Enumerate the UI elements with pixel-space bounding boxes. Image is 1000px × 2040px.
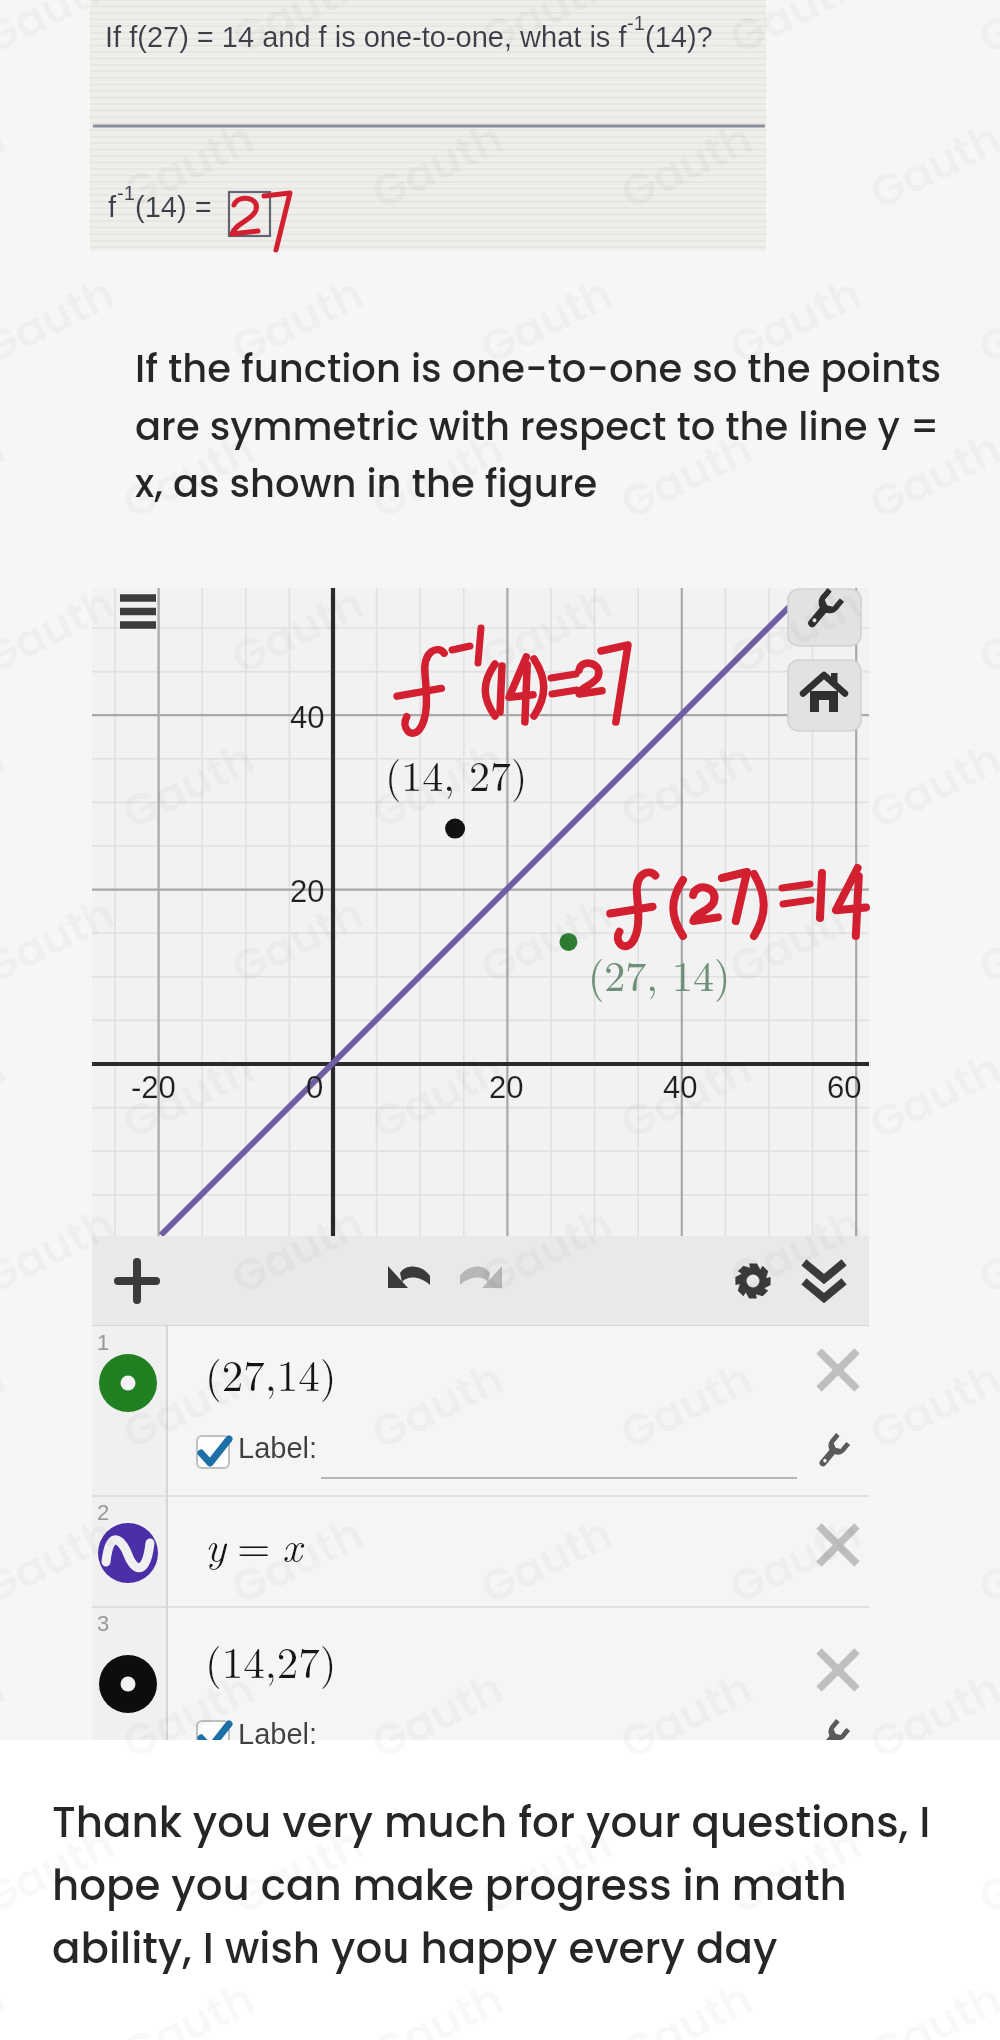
staticText: Gauth <box>859 1658 1000 1774</box>
staticText: Gauth <box>221 0 373 69</box>
staticText: Gauth <box>719 1813 871 1929</box>
staticText: Gauth <box>0 573 124 689</box>
staticText: -20 <box>131 1070 176 1105</box>
staticText: Gauth <box>610 418 762 534</box>
button[interactable]: Menu <box>92 588 162 648</box>
staticText: Gauth <box>470 1503 622 1619</box>
staticText: Gauth <box>0 1813 124 1929</box>
staticText: (14,27) <box>205 1630 337 1691</box>
staticText: Gauth <box>361 1658 513 1774</box>
staticText: Thank you very much for your questions, … <box>52 1793 952 1978</box>
staticText: Label: <box>238 1718 318 1750</box>
staticText: Gauth <box>221 573 373 689</box>
staticText: (14, 27) <box>385 744 528 804</box>
staticText: Gauth <box>112 1348 264 1464</box>
button[interactable]: Home <box>788 660 861 731</box>
staticText: Gauth <box>470 1813 622 1929</box>
staticText: Label: <box>238 1432 318 1464</box>
staticText: Gauth <box>221 1193 373 1309</box>
staticText: Gauth <box>719 573 871 689</box>
staticText: Gauth <box>221 263 373 379</box>
staticText: (14) = <box>135 191 212 223</box>
staticText: Gauth <box>719 0 871 69</box>
staticText: Gauth <box>361 418 513 534</box>
button[interactable]: Delete expression 3 <box>814 1644 862 1692</box>
staticText: Gauth <box>0 1503 124 1619</box>
button[interactable]: Redo <box>456 1255 508 1307</box>
button[interactable]: Collapse <box>798 1255 850 1307</box>
staticText: -1 <box>117 182 135 204</box>
staticText: Gauth <box>610 1968 762 2040</box>
staticText: Gauth <box>0 0 124 69</box>
button[interactable]: Expression 3: (14,27) <box>92 1608 869 1740</box>
staticText: y <box>205 1514 226 1575</box>
staticText: Gauth <box>361 1968 513 2040</box>
button[interactable]: Undo <box>385 1255 437 1307</box>
button[interactable]: Delete expression 2 <box>814 1515 862 1563</box>
staticText: Gauth <box>470 0 622 69</box>
staticText: 40 <box>290 700 325 735</box>
button[interactable]: Delete expression 1 <box>814 1348 862 1396</box>
staticText: Gauth <box>610 108 762 224</box>
staticText: Gauth <box>112 418 264 534</box>
staticText: Gauth <box>859 1038 1000 1154</box>
staticText: Gauth <box>361 108 513 224</box>
staticText: 20 <box>290 874 325 909</box>
staticText: Gauth <box>112 1658 264 1774</box>
staticText: Gauth <box>719 883 871 999</box>
button[interactable]: Add expression <box>110 1255 165 1307</box>
staticText: Gauth <box>112 1968 264 2040</box>
staticText: Gauth <box>221 1503 373 1619</box>
button[interactable]: Graph settings <box>788 589 861 646</box>
staticText: (27,14) <box>205 1343 337 1404</box>
staticText: Gauth <box>719 263 871 379</box>
staticText: Gauth <box>221 1813 373 1929</box>
staticText: 60 <box>827 1070 862 1105</box>
staticText: Gauth <box>610 728 762 844</box>
staticText: Gauth <box>361 1038 513 1154</box>
staticText: Gauth <box>112 728 264 844</box>
staticText: Gauth <box>112 1038 264 1154</box>
staticText: Gauth <box>112 108 264 224</box>
staticText: Gauth <box>0 883 124 999</box>
staticText: Gauth <box>719 1193 871 1309</box>
staticText: = <box>237 1514 271 1575</box>
staticText: 2 <box>97 1500 110 1525</box>
staticText: (27, 14) <box>588 944 731 1004</box>
staticText: If f(27) = 14 and f is one-to-one, what … <box>105 21 627 53</box>
staticText: Gauth <box>470 883 622 999</box>
staticText: Gauth <box>610 1658 762 1774</box>
button[interactable]: Expression 1: (27,14) <box>92 1326 869 1496</box>
staticText: 40 <box>663 1070 698 1105</box>
staticText: If the function is one-to-one so the poi… <box>135 342 961 510</box>
staticText: 20 <box>489 1070 524 1105</box>
staticText: Gauth <box>221 883 373 999</box>
button[interactable]: Expression 2: y = x <box>92 1497 869 1607</box>
staticText: Gauth <box>0 1658 15 1774</box>
staticText: Gauth <box>470 263 622 379</box>
staticText: 1 <box>97 1330 110 1355</box>
staticText: Gauth <box>610 1038 762 1154</box>
staticText: x <box>282 1514 302 1575</box>
staticText: 3 <box>97 1611 110 1636</box>
button[interactable]: Settings <box>727 1255 779 1307</box>
